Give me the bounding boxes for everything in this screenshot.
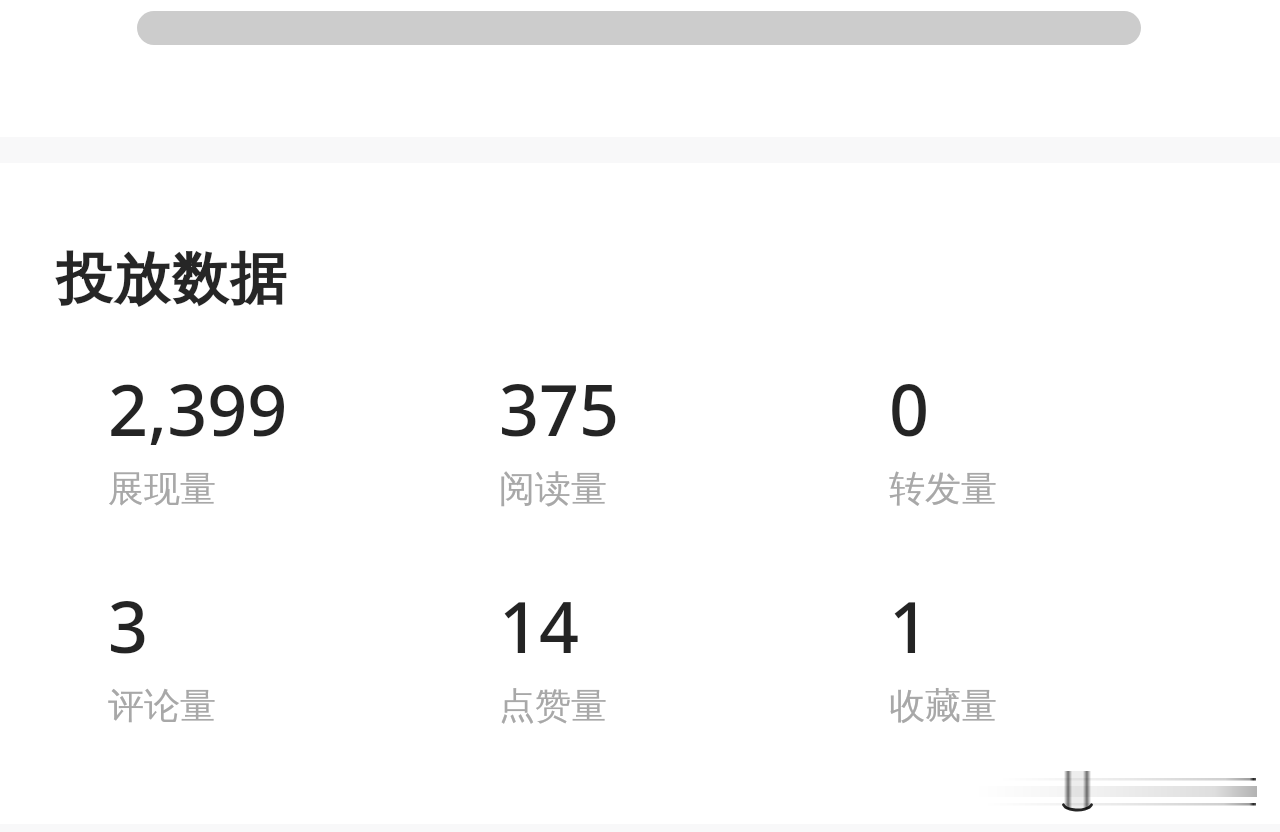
button[interactable]: 2,399 [108,361,499,511]
button[interactable]: 3 [108,578,499,728]
staticText: 14 [499,578,580,673]
staticText: 1 [889,578,930,673]
button[interactable]: 14 [499,578,889,728]
button[interactable]: Search [137,11,1141,45]
staticText: 展现量 [108,466,216,511]
staticText: 阅读量 [499,466,607,511]
staticText: 收藏量 [889,683,997,728]
staticText: 2,399 [108,361,288,456]
staticText: 转发量 [889,466,997,511]
staticText: 点赞量 [499,683,607,728]
staticText: 投放数据 [55,244,287,315]
button[interactable]: 0 [889,361,1189,511]
staticText: 375 [499,361,620,456]
staticText: 3 [108,578,149,673]
staticText: 0 [889,361,930,456]
staticText: 评论量 [108,683,216,728]
button[interactable]: 375 [499,361,889,511]
button[interactable]: 1 [889,578,1189,728]
